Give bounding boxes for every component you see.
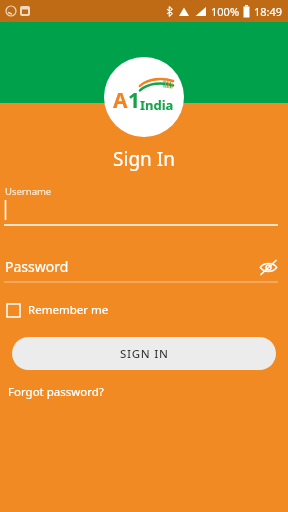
- button[interactable]: Show password: [257, 256, 279, 278]
- button[interactable]: SIGN IN: [12, 337, 276, 370]
- staticText: A: [113, 86, 128, 115]
- staticText: 1: [128, 86, 141, 115]
- staticText: Forgot password?: [8, 384, 104, 400]
- staticText: SIGN IN: [120, 346, 169, 362]
- staticText: Remember me: [28, 302, 109, 318]
- staticText: India: [140, 96, 174, 114]
- staticText: Password: [5, 257, 69, 276]
- button[interactable]: Forgot password?: [6, 382, 106, 402]
- staticText: Sign In: [0, 146, 288, 172]
- staticText: 100%: [211, 4, 240, 19]
- button[interactable]: Remember me: [5, 300, 115, 320]
- button[interactable]: [0, 198, 288, 228]
- button[interactable]: Password: [0, 253, 288, 284]
- staticText: 18:49: [254, 4, 283, 19]
- staticText: Username: [5, 185, 52, 198]
